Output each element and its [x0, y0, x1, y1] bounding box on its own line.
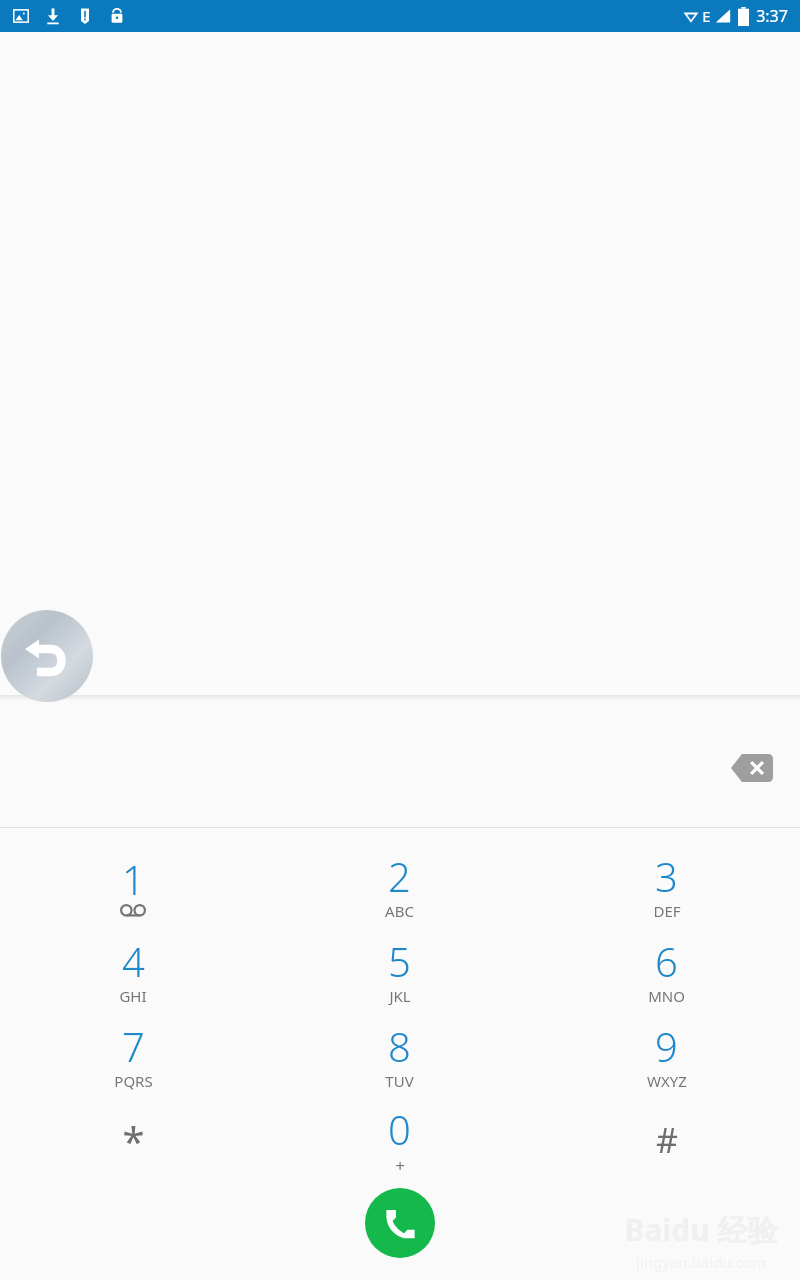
staticText: ABC: [385, 901, 414, 921]
staticText: 6: [655, 934, 678, 984]
staticText: E: [702, 6, 711, 26]
button[interactable]: Back: [1, 610, 93, 702]
staticText: 0: [388, 1102, 411, 1152]
button[interactable]: 3: [533, 842, 800, 927]
staticText: 1: [122, 852, 145, 902]
button[interactable]: 6: [533, 927, 800, 1012]
staticText: +: [395, 1154, 405, 1177]
staticText: 3:37: [756, 5, 788, 27]
staticText: 8: [388, 1019, 411, 1069]
staticText: Baidu 经验: [624, 1209, 778, 1250]
staticText: *: [122, 1113, 145, 1167]
button[interactable]: 7: [0, 1012, 266, 1097]
button[interactable]: 5: [266, 927, 533, 1012]
staticText: MNO: [648, 986, 685, 1006]
staticText: 9: [655, 1019, 678, 1069]
staticText: JKL: [389, 986, 411, 1006]
button[interactable]: #: [533, 1097, 800, 1182]
button[interactable]: 4: [0, 927, 266, 1012]
button[interactable]: 8: [266, 1012, 533, 1097]
staticText: #: [656, 1117, 678, 1163]
button[interactable]: Delete: [724, 746, 780, 790]
staticText: 7: [122, 1019, 145, 1069]
staticText: 4: [122, 934, 145, 984]
staticText: 3: [655, 849, 678, 899]
staticText: DEF: [653, 901, 681, 921]
button[interactable]: 2: [266, 842, 533, 927]
button[interactable]: Call: [365, 1188, 435, 1258]
button[interactable]: 0: [266, 1097, 533, 1182]
staticText: GHI: [119, 986, 147, 1006]
staticText: PQRS: [114, 1071, 153, 1091]
staticText: TUV: [385, 1071, 414, 1091]
button[interactable]: *: [0, 1097, 266, 1182]
button[interactable]: 9: [533, 1012, 800, 1097]
staticText: 5: [388, 934, 411, 984]
staticText: WXYZ: [647, 1071, 687, 1091]
staticText: 2: [388, 849, 411, 899]
button[interactable]: 1: [0, 842, 266, 927]
